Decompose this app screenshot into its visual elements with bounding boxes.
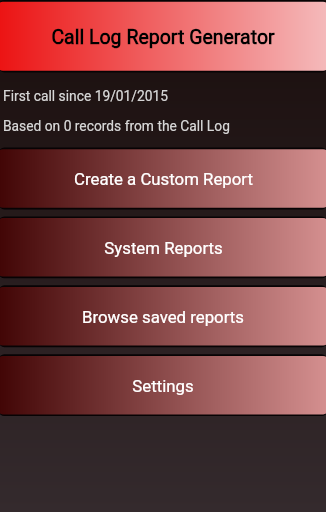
staticText: Settings [132,376,194,396]
button[interactable]: Browse saved reports [0,287,326,346]
button[interactable]: Settings [0,356,326,415]
staticText: Call Log Report Generator [51,26,275,49]
button[interactable]: Create a Custom Report [0,149,326,208]
staticText: Create a Custom Report [74,169,253,189]
button[interactable]: Call Log Report Generator [0,2,326,71]
staticText: Browse saved reports [82,307,244,327]
button[interactable]: System Reports [0,218,326,277]
staticText: System Reports [104,238,223,258]
staticText: First call since 19/01/2015 [3,88,169,104]
staticText: Based on 0 records from the Call Log [3,118,230,134]
